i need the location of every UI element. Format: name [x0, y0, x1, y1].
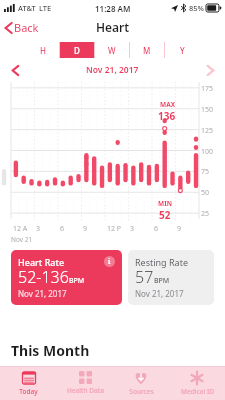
staticText: Nov 21	[11, 235, 33, 244]
staticText: 75	[201, 167, 210, 177]
staticText: Medical ID	[181, 387, 214, 396]
staticText: 3	[130, 224, 135, 234]
staticText: 52-136	[18, 266, 69, 288]
staticText: 9	[83, 224, 88, 234]
staticText: i	[108, 257, 111, 267]
button[interactable]: Sources	[113, 367, 169, 400]
staticText: Resting Rate	[135, 256, 188, 268]
staticText: 11:28 AM	[95, 3, 131, 14]
staticText: Nov 21, 2017	[135, 288, 184, 299]
button[interactable]: Previous day	[6, 61, 24, 79]
button[interactable]: Back	[0, 17, 47, 38]
staticText: 6	[154, 224, 159, 234]
staticText: 100	[201, 147, 214, 157]
staticText: 9	[177, 224, 182, 234]
button[interactable]: Health Data	[57, 367, 113, 400]
staticText: 150	[201, 105, 214, 115]
staticText: Health Data	[67, 386, 104, 395]
staticText: Nov 21, 2017	[18, 288, 67, 299]
button[interactable]: Medical ID	[169, 367, 225, 400]
button[interactable]: Info	[104, 256, 115, 267]
staticText: 175	[201, 84, 214, 94]
staticText: Today	[19, 387, 38, 396]
button[interactable]: D	[60, 42, 94, 58]
button[interactable]: Y	[165, 42, 199, 58]
staticText: W	[108, 45, 116, 56]
staticText: M	[143, 45, 151, 56]
staticText: MIN	[158, 199, 172, 208]
staticText: Y	[180, 45, 185, 56]
staticText: 12 P	[107, 224, 122, 234]
staticText: 85%	[189, 3, 204, 13]
staticText: This Month	[11, 341, 90, 360]
button[interactable]: Today	[0, 367, 57, 400]
button[interactable]: Heart Rate	[11, 250, 122, 305]
button[interactable]: H	[26, 42, 59, 58]
staticText: 136	[158, 109, 176, 123]
button[interactable]: W	[95, 42, 129, 58]
staticText: 50	[201, 188, 210, 198]
staticText: BPM	[69, 276, 85, 286]
staticText: H	[40, 45, 46, 56]
staticText: Heart Rate	[18, 256, 65, 268]
staticText: LTE	[39, 3, 52, 13]
button[interactable]: M	[130, 42, 164, 58]
button[interactable]: Resting Rate	[128, 250, 214, 305]
staticText: 57	[135, 266, 154, 288]
staticText: 6	[60, 224, 65, 234]
staticText: Back	[14, 20, 39, 35]
staticText: 52	[159, 208, 171, 222]
staticText: D	[74, 45, 80, 56]
button[interactable]: Next day	[201, 61, 219, 79]
staticText: 25	[201, 209, 210, 219]
staticText: 3	[36, 224, 41, 234]
staticText: MAX	[160, 100, 175, 109]
staticText: 12 A	[13, 224, 28, 234]
staticText: Sources	[129, 387, 154, 396]
staticText: 125	[201, 126, 214, 136]
staticText: Nov 21, 2017	[86, 64, 139, 76]
staticText: Heart	[96, 19, 130, 35]
staticText: AT&T	[18, 3, 36, 13]
staticText: BPM	[154, 276, 170, 286]
